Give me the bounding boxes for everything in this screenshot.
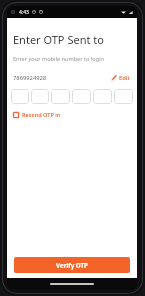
staticText: Enter OTP Sent to	[13, 32, 104, 47]
staticText: Verify OTP	[56, 261, 88, 269]
button[interactable]: Resend OTP timer	[12, 109, 62, 121]
button[interactable]	[72, 89, 91, 104]
staticText: Enter your mobile number to login	[13, 55, 105, 63]
staticText: Edit	[119, 74, 130, 82]
button[interactable]	[51, 89, 70, 104]
button[interactable]	[93, 89, 112, 104]
other: Resend OTP timer	[13, 112, 19, 118]
button[interactable]	[31, 89, 49, 104]
staticText: 7869924928	[13, 74, 47, 82]
button[interactable]: Verify OTP	[14, 257, 130, 273]
staticText: Resend OTP in	[22, 111, 61, 119]
button[interactable]: Edit phone number	[110, 72, 131, 84]
staticText: 4:43	[19, 9, 29, 16]
button[interactable]	[114, 89, 133, 104]
button[interactable]	[11, 89, 29, 104]
other: Edit phone number	[111, 75, 117, 81]
